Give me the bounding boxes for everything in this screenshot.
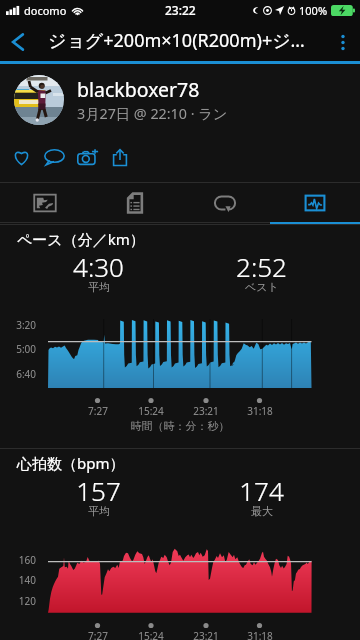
staticText: 23:21 <box>186 629 226 640</box>
staticText: 31:18 <box>240 629 280 640</box>
staticText: 23:21 <box>186 404 226 418</box>
staticText: 7:27 <box>78 629 118 640</box>
button[interactable]: Back <box>0 22 36 62</box>
button[interactable]: Like <box>8 144 35 170</box>
staticText: 3月27日 @ 22:10 · ラン <box>77 104 228 124</box>
staticText: 6:40 <box>14 367 36 381</box>
staticText: 平均 <box>88 504 110 518</box>
button[interactable]: Graphs <box>270 183 360 222</box>
staticText: ベスト <box>245 280 279 294</box>
staticText: 2:52 <box>236 249 287 284</box>
staticText: docomo <box>24 3 67 18</box>
staticText: 3:20 <box>14 318 36 332</box>
staticText: ペース（分／km） <box>17 229 145 249</box>
staticText: 174 <box>239 473 284 508</box>
staticText: 時間（時：分：秒） <box>0 419 360 433</box>
button[interactable]: Splits <box>90 183 180 222</box>
staticText: 平均 <box>88 280 110 294</box>
staticText: 120 <box>14 594 36 608</box>
staticText: blackboxer78 <box>77 76 200 103</box>
staticText: 心拍数（bpm） <box>17 453 125 473</box>
staticText: 15:24 <box>131 404 171 418</box>
button[interactable]: Comment <box>39 144 70 170</box>
staticText: 157 <box>76 473 121 508</box>
staticText: 160 <box>14 553 36 567</box>
button[interactable]: Map <box>0 183 90 222</box>
staticText: 7:27 <box>78 404 118 418</box>
button[interactable]: Share <box>107 144 133 171</box>
staticText: 23:22 <box>165 2 196 18</box>
button[interactable]: Add photo <box>72 144 104 170</box>
staticText: ジョグ+200m×10(R200m)+ジ… <box>48 28 305 53</box>
staticText: 最大 <box>251 504 273 518</box>
button[interactable]: Laps <box>180 183 270 222</box>
staticText: 15:24 <box>131 629 171 640</box>
staticText: 31:18 <box>240 404 280 418</box>
staticText: 5:00 <box>14 342 36 356</box>
button[interactable]: More options <box>326 22 360 62</box>
staticText: 100% <box>299 3 328 18</box>
staticText: 4:30 <box>73 249 124 284</box>
staticText: 140 <box>14 573 36 587</box>
